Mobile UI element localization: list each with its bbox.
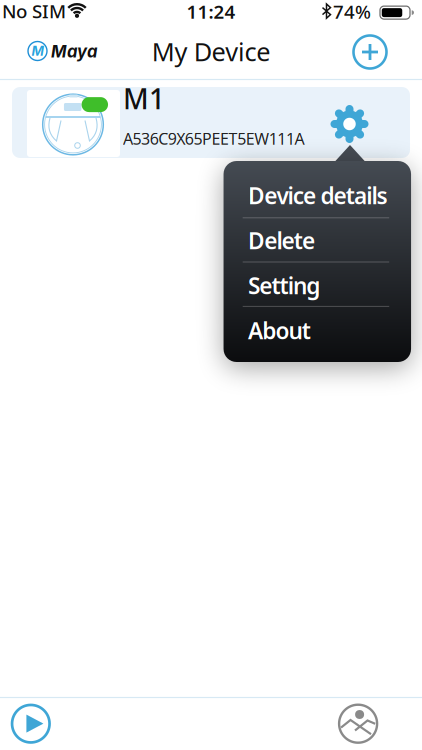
staticText: No SIM (2, 0, 66, 23)
staticText: 74% (333, 0, 371, 24)
staticText: Device details (248, 180, 388, 210)
staticText: A536C9X65PEET5EW111A (123, 128, 304, 149)
staticText: Delete (248, 225, 315, 255)
staticText: My Device (152, 35, 270, 68)
staticText: Maya (51, 41, 98, 62)
staticText: Setting (248, 270, 320, 300)
staticText: M1 (123, 80, 165, 117)
staticText: M (31, 43, 43, 59)
staticText: About (248, 315, 311, 345)
staticText: 11:24 (186, 0, 235, 24)
